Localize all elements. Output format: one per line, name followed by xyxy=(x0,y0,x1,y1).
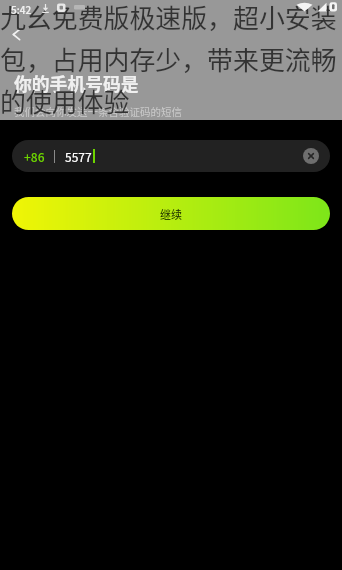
staticText: 九幺免费版极速版，超小安装包，占用内存少，带来更流畅的使用体验 xyxy=(0,0,342,118)
staticText: 你的手机号码是 xyxy=(14,70,139,96)
staticText: 我们会向你发送一条含验证码的短信 xyxy=(14,104,182,119)
staticText: 5:42 xyxy=(11,2,32,16)
staticText: +86 xyxy=(24,148,45,165)
button[interactable]: Clear text xyxy=(303,148,319,164)
staticText: 5577 xyxy=(65,148,92,165)
staticText: 继续 xyxy=(160,206,182,222)
button[interactable]: Back xyxy=(2,20,30,48)
button[interactable]: 继续 xyxy=(12,197,330,230)
button[interactable]: +86 xyxy=(12,140,330,172)
